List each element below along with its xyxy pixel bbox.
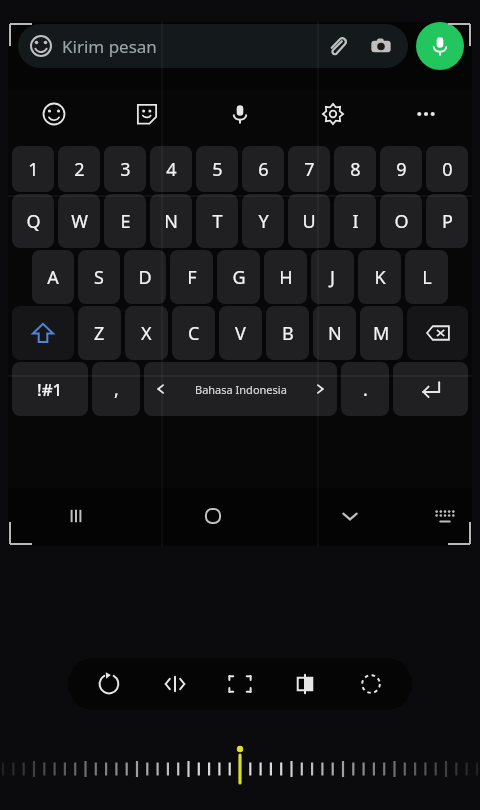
button[interactable]: 5 [196,146,238,192]
button[interactable]: J [311,250,354,304]
staticText: G [232,265,246,290]
button[interactable]: Backspace [407,306,468,360]
button[interactable]: E [104,194,146,248]
button[interactable]: C [172,306,215,360]
button[interactable]: Emoji keyboard [8,90,100,138]
staticText: K [374,265,386,290]
staticText: L [422,265,432,290]
button[interactable]: Code [151,660,199,708]
staticText: N [328,321,342,346]
button[interactable]: Emoji [18,24,408,68]
button[interactable]: I [334,194,376,248]
staticText: !#1 [37,378,63,401]
button[interactable]: G [217,250,260,304]
button[interactable]: S [78,250,120,304]
staticText: D [138,265,152,290]
button[interactable]: Home [144,488,281,544]
staticText: T [212,209,223,234]
button[interactable]: A [32,250,74,304]
staticText: 3 [120,157,131,182]
button[interactable]: Stickers [100,90,193,138]
button[interactable]: V [219,306,262,360]
staticText: 9 [396,157,407,182]
staticText: 7 [304,157,315,182]
button[interactable]: M [360,306,403,360]
staticText: Q [26,209,41,234]
button[interactable]: Free aspect [216,660,264,708]
button[interactable]: Recents [8,488,144,544]
button[interactable]: , [92,362,140,416]
button[interactable]: Hide keyboard [281,488,418,544]
staticText: Kirim pesan [62,35,157,58]
staticText: . [363,377,368,402]
button[interactable]: !#1 [12,362,88,416]
button[interactable]: K [358,250,401,304]
button[interactable]: Camera [366,31,396,61]
staticText: A [47,265,59,290]
staticText: X [141,321,152,346]
staticText: Bahasa Indonesia [195,382,287,397]
button[interactable]: X [125,306,168,360]
button[interactable]: Bahasa Indonesia [144,362,337,416]
button[interactable]: 8 [334,146,376,192]
staticText: B [282,321,294,346]
button[interactable]: B [266,306,309,360]
staticText: E [120,209,131,234]
button[interactable]: Mask [347,660,395,708]
button[interactable]: W [58,194,100,248]
staticText: P [442,209,453,234]
staticText: S [94,265,104,290]
staticText: O [394,209,409,234]
button[interactable]: L [405,250,448,304]
staticText: F [187,265,197,290]
button[interactable]: N [313,306,356,360]
button[interactable]: Split view [281,660,329,708]
button[interactable]: Rotate [85,660,133,708]
other: Emoji [30,35,52,57]
button[interactable]: Y [242,194,284,248]
button[interactable]: 7 [288,146,330,192]
button[interactable]: T [196,194,238,248]
staticText: Z [94,321,105,346]
button[interactable]: D [124,250,166,304]
button[interactable]: H [264,250,307,304]
button[interactable]: F [170,250,213,304]
button[interactable]: Q [12,194,54,248]
staticText: 0 [442,157,453,182]
staticText: U [302,209,316,234]
button[interactable]: Voice input [193,90,286,138]
staticText: N [164,209,178,234]
button[interactable]: Attach [322,31,352,61]
button[interactable]: Shift [12,306,74,360]
staticText: H [279,265,293,290]
staticText: 8 [350,157,361,182]
button[interactable]: 9 [380,146,422,192]
button[interactable]: 0 [426,146,468,192]
button[interactable]: Keyboard switcher [418,488,472,544]
button[interactable]: Enter [393,362,468,416]
button[interactable]: Voice message [416,22,464,70]
staticText: 1 [28,157,39,182]
staticText: 5 [212,157,223,182]
button[interactable]: More options [379,90,472,138]
staticText: 2 [74,157,85,182]
button[interactable]: 1 [12,146,54,192]
button[interactable]: . [341,362,389,416]
staticText: 4 [166,157,177,182]
button[interactable]: U [288,194,330,248]
button[interactable]: 6 [242,146,284,192]
button[interactable]: Z [78,306,121,360]
staticText: C [188,321,200,346]
button[interactable]: 3 [104,146,146,192]
button[interactable]: 4 [150,146,192,192]
staticText: Y [258,209,269,234]
button[interactable]: 2 [58,146,100,192]
staticText: J [330,265,335,290]
button[interactable]: N [150,194,192,248]
button[interactable]: P [426,194,468,248]
staticText: V [235,321,246,346]
button[interactable]: Settings [286,90,379,138]
staticText: W [71,209,88,234]
button[interactable]: Timeline [0,742,480,802]
button[interactable]: O [380,194,422,248]
